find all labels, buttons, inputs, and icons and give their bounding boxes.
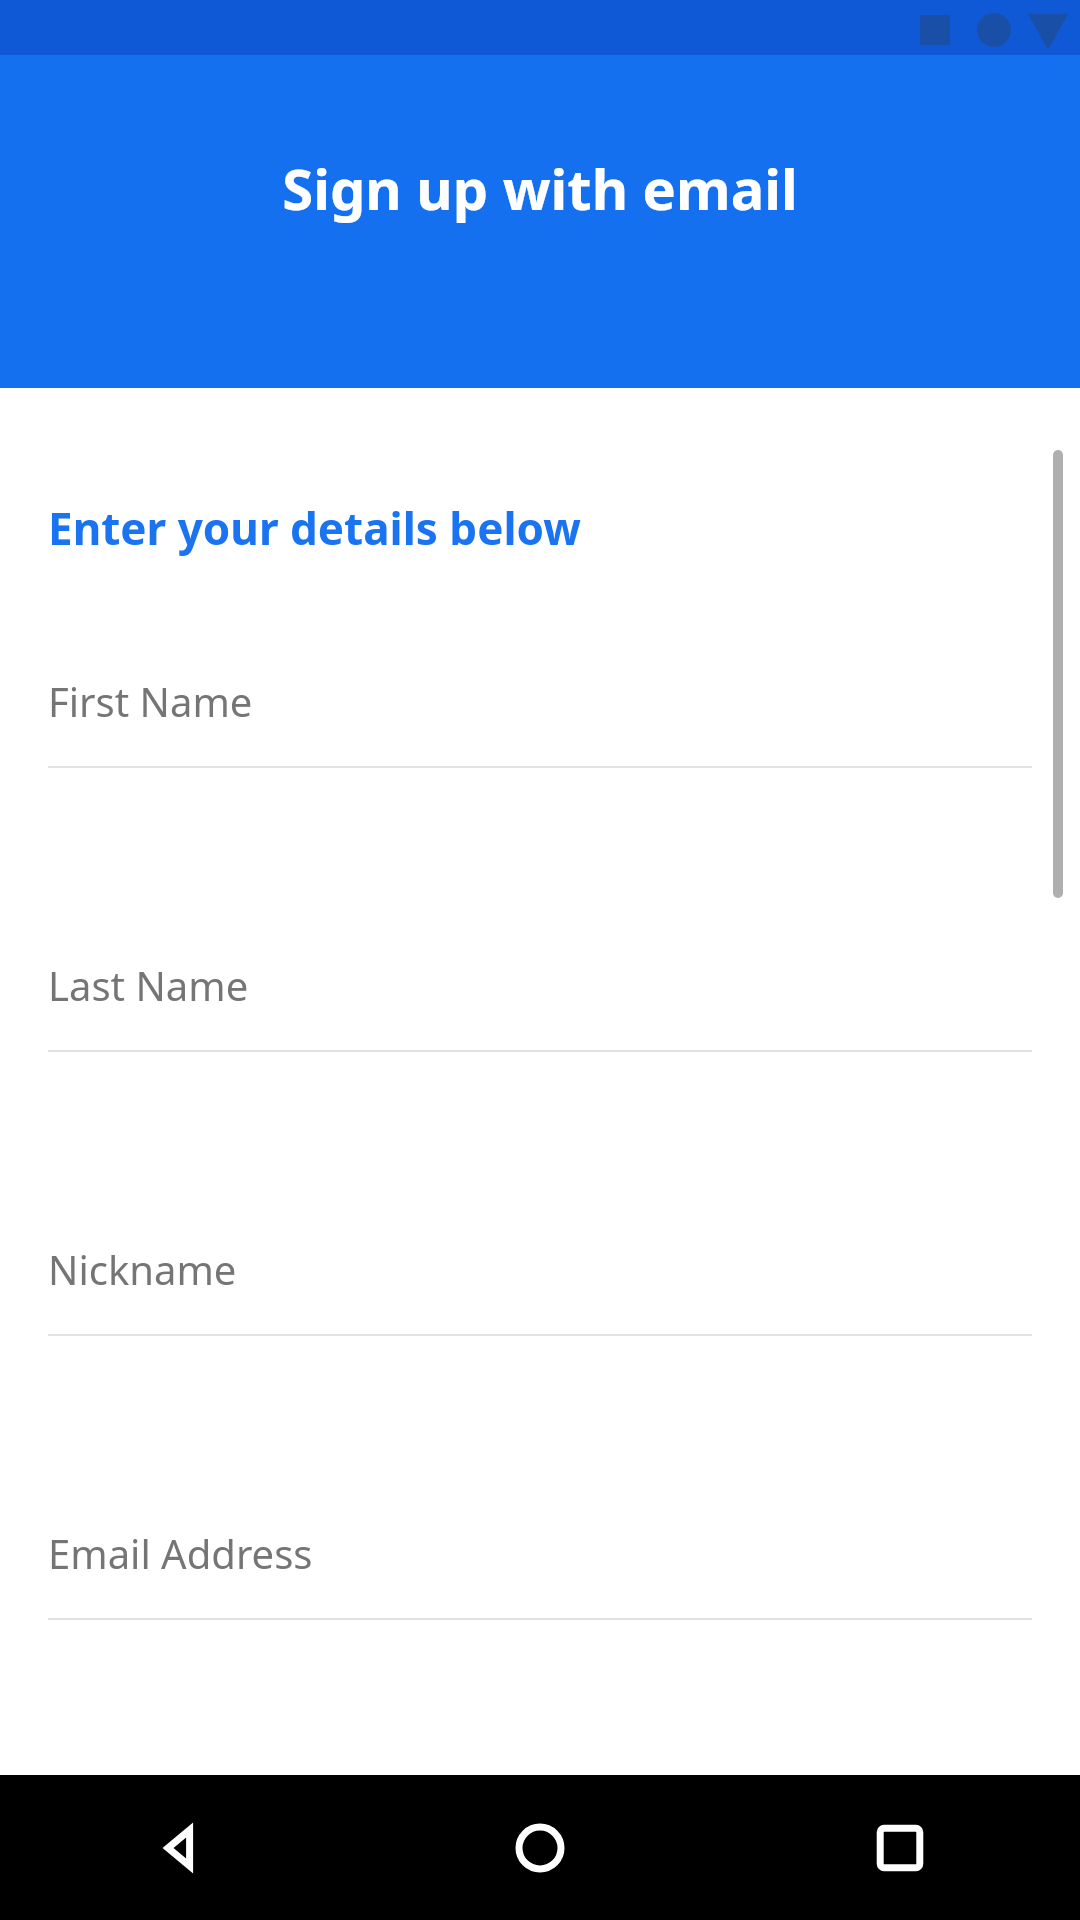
button[interactable]: Email Address	[0, 1526, 1080, 1775]
button[interactable]: First Name	[0, 674, 1080, 958]
button[interactable]: Last Name	[0, 958, 1080, 1242]
button[interactable]: Recent apps	[720, 1775, 1080, 1920]
staticText: Email Address	[48, 1526, 313, 1580]
staticText: Nickname	[48, 1242, 237, 1296]
staticText: Last Name	[48, 958, 249, 1012]
button[interactable]: Nickname	[0, 1242, 1080, 1526]
staticText: Enter your details below	[48, 498, 581, 558]
button[interactable]: Back	[0, 1775, 360, 1920]
staticText: First Name	[48, 674, 253, 728]
staticText: Sign up with email	[0, 150, 1080, 226]
button[interactable]: Home	[360, 1775, 720, 1920]
